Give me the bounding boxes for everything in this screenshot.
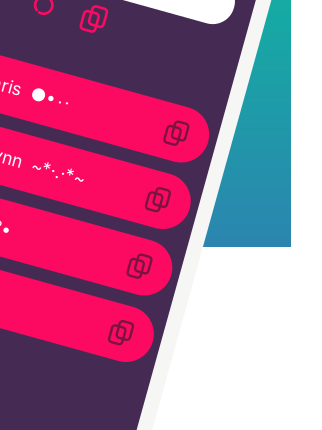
button[interactable]: ~*·.·*~ Morwynn ~*·.·*~ [0, 133, 182, 189]
staticText: •°• Kaeldrith •°• [0, 220, 16, 241]
staticText: ~*·.·*~ Morwynn ~*·.·*~ [0, 151, 73, 172]
button[interactable]: •°• Kaeldrith •°• [0, 202, 182, 258]
staticText: ·٠•● Aeltharis ●•٠· [0, 82, 38, 103]
button[interactable]: ·٠•● Aeltharis ●•٠· [0, 64, 182, 120]
button[interactable]: ·~* Sylvaenor *~· [0, 271, 182, 327]
button[interactable]: Copy [23, 0, 55, 20]
